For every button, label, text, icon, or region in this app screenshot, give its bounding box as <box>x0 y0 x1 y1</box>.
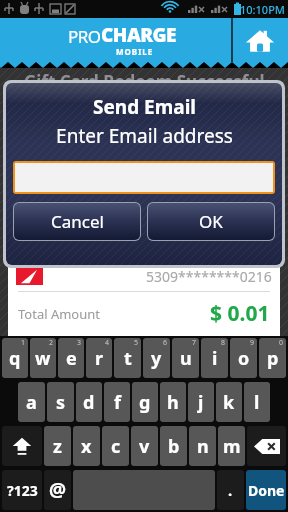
staticText: g <box>139 390 151 415</box>
button[interactable]: b <box>160 426 187 466</box>
button[interactable]: 1 <box>2 338 28 378</box>
staticText: e <box>66 346 77 371</box>
staticText: i <box>212 346 218 371</box>
staticText: $ 0.01 <box>210 299 270 328</box>
staticText: n <box>197 434 209 459</box>
button[interactable]: m <box>218 426 245 466</box>
staticText: 2 <box>49 338 54 348</box>
button[interactable]: 8 <box>201 338 228 378</box>
staticText: Cancel <box>51 210 104 233</box>
staticText: 6 <box>163 338 168 348</box>
button[interactable]: Cancel <box>14 203 140 240</box>
button[interactable]: v <box>131 426 158 466</box>
button[interactable]: c <box>102 426 129 466</box>
button[interactable]: ?123 <box>2 470 42 510</box>
staticText: u <box>180 346 192 371</box>
staticText: m <box>223 434 241 459</box>
staticText: OK <box>199 210 223 233</box>
staticText: CHARGE <box>101 22 177 48</box>
staticText: p <box>267 346 279 371</box>
button[interactable]: x <box>73 426 100 466</box>
staticText: 3 <box>77 338 82 348</box>
staticText: Enter Email address <box>56 123 233 149</box>
staticText: @ <box>49 477 67 503</box>
button[interactable]: 0 <box>259 338 286 378</box>
staticText: 4 <box>105 338 110 348</box>
button[interactable]: OK <box>148 203 274 240</box>
button[interactable]: j <box>188 382 214 422</box>
staticText: Send Email <box>93 94 196 120</box>
staticText: . <box>228 480 233 500</box>
staticText: 1 <box>21 338 26 348</box>
button[interactable]: 5 <box>114 338 141 378</box>
staticText: k <box>223 390 235 415</box>
staticText: d <box>83 390 95 415</box>
staticText: f <box>114 390 121 415</box>
staticText: ?123 <box>7 481 38 500</box>
button[interactable]: @ <box>44 470 71 510</box>
button[interactable]: . <box>217 470 244 510</box>
button[interactable]: 7 <box>172 338 199 378</box>
staticText: 9 <box>250 338 255 348</box>
button[interactable]: 4 <box>86 338 112 378</box>
staticText: t <box>124 346 132 371</box>
staticText: v <box>139 434 150 459</box>
button[interactable]: g <box>132 382 158 422</box>
staticText: 10:10PM <box>240 2 285 17</box>
staticText: 0 <box>279 338 284 348</box>
button[interactable]: k <box>216 382 242 422</box>
button[interactable]: l <box>244 382 270 422</box>
button[interactable]: z <box>44 426 71 466</box>
staticText: a <box>26 390 37 415</box>
staticText: l <box>254 390 260 415</box>
staticText: 7 <box>192 338 197 348</box>
button[interactable]: 3 <box>58 338 84 378</box>
button[interactable]: h <box>160 382 186 422</box>
button[interactable]: d <box>76 382 102 422</box>
button[interactable]: Shift <box>2 426 42 466</box>
staticText: Done <box>248 481 285 500</box>
staticText: x <box>81 434 92 459</box>
staticText: 8 <box>221 338 226 348</box>
staticText: b <box>168 434 180 459</box>
staticText: PRO <box>68 25 101 48</box>
button[interactable]: Home <box>232 18 288 68</box>
staticText: q <box>9 346 21 371</box>
staticText: 5 <box>134 338 139 348</box>
button[interactable]: f <box>104 382 130 422</box>
button[interactable]: 9 <box>230 338 257 378</box>
staticText: 5309********0216 <box>146 267 272 286</box>
staticText: w <box>35 346 51 371</box>
button[interactable]: s <box>47 382 74 422</box>
staticText: Gift Card Redeem Successful <box>24 70 265 93</box>
staticText: y <box>151 346 162 371</box>
staticText: h <box>167 390 179 415</box>
staticText: MOBILE <box>116 46 154 57</box>
staticText: j <box>198 390 204 415</box>
staticText: Total Amount <box>18 305 100 323</box>
staticText: s <box>56 390 66 415</box>
button[interactable]: a <box>18 382 45 422</box>
staticText: r <box>95 346 104 371</box>
staticText: c <box>111 434 121 459</box>
button[interactable]: 6 <box>143 338 170 378</box>
staticText: o <box>238 346 250 371</box>
staticText: z <box>53 434 62 459</box>
button[interactable]: Done <box>246 470 286 510</box>
button[interactable]: Backspace <box>247 426 286 466</box>
button[interactable]: n <box>189 426 216 466</box>
button[interactable]: 2 <box>30 338 56 378</box>
